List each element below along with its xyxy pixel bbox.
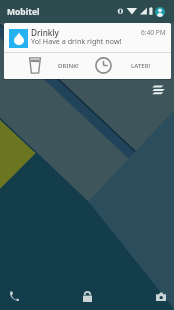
staticText: Mobitel [7,6,40,18]
button[interactable]: DRINK! [29,52,77,78]
staticText: DRINK! [58,61,79,69]
button[interactable]: Camera [152,287,170,305]
staticText: 6:40 PM [141,28,166,37]
button[interactable]: More notifications [150,83,166,95]
button[interactable]: Unlock [78,287,96,305]
button[interactable]: Drinkly [4,23,171,79]
button[interactable]: User profile [155,7,165,17]
button[interactable]: LATER! [95,52,153,78]
staticText: Yo! Have a drink right now! [31,36,122,46]
button[interactable]: Phone [5,287,23,305]
staticText: Drinkly [31,27,59,38]
staticText: LATER! [131,61,151,69]
